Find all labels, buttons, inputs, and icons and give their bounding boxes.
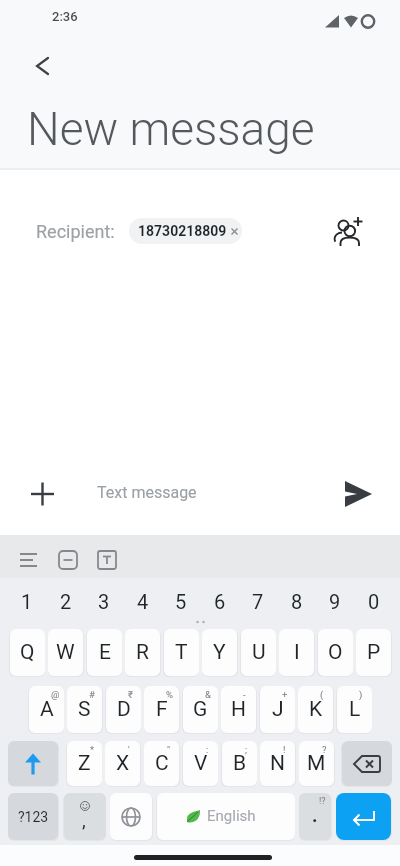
button[interactable] xyxy=(333,216,363,248)
button[interactable] xyxy=(340,478,376,510)
staticText: M xyxy=(307,751,326,776)
staticText: ; xyxy=(245,744,248,755)
staticText: A xyxy=(40,697,54,722)
staticText: % xyxy=(166,689,173,700)
button[interactable]: K xyxy=(298,686,333,733)
button[interactable]: A xyxy=(29,686,64,733)
button[interactable]: 2 xyxy=(47,586,85,616)
button[interactable]: English xyxy=(157,793,295,840)
staticText: Q xyxy=(20,640,35,665)
staticText: Z xyxy=(78,751,91,776)
staticText: G xyxy=(193,697,208,722)
staticText: ' xyxy=(128,744,130,755)
button[interactable]: M xyxy=(299,741,334,786)
staticText: . xyxy=(312,804,318,826)
button[interactable]: 6 xyxy=(201,586,239,616)
button[interactable] xyxy=(342,741,392,786)
button[interactable]: I xyxy=(279,629,314,676)
staticText: , xyxy=(82,809,86,831)
staticText: !? xyxy=(319,796,326,807)
button[interactable]: ?123 xyxy=(8,793,58,840)
staticText: I xyxy=(294,640,300,665)
button[interactable]: W xyxy=(48,629,83,676)
staticText: R xyxy=(136,640,149,665)
staticText: 6 xyxy=(214,590,226,613)
staticText: 2:36 xyxy=(52,9,78,24)
staticText: + xyxy=(282,689,288,700)
staticText: ( xyxy=(320,689,324,700)
staticText: 0 xyxy=(368,590,380,613)
button[interactable]: J xyxy=(260,686,295,733)
staticText: : xyxy=(206,744,209,755)
staticText: * xyxy=(90,744,95,755)
button[interactable]: !? xyxy=(299,793,331,840)
staticText: L xyxy=(349,697,361,722)
button[interactable] xyxy=(24,46,64,86)
button[interactable]: D xyxy=(106,686,141,733)
staticText: 5 xyxy=(175,590,187,613)
button[interactable]: H xyxy=(221,686,256,733)
button[interactable] xyxy=(94,548,122,572)
button[interactable]: 3 xyxy=(85,586,123,616)
button[interactable] xyxy=(26,477,60,511)
staticText: English xyxy=(207,807,256,825)
staticText: T xyxy=(175,640,188,665)
staticText: New message xyxy=(27,102,315,156)
staticText: P xyxy=(367,640,381,665)
button[interactable]: C xyxy=(144,741,179,786)
button[interactable] xyxy=(55,548,83,572)
staticText: V xyxy=(194,751,208,776)
button[interactable]: V xyxy=(183,741,218,786)
button[interactable]: 18730218809 xyxy=(129,218,242,244)
staticText: B xyxy=(233,751,247,776)
button[interactable]: B xyxy=(222,741,257,786)
button[interactable]: Z xyxy=(67,741,102,786)
button[interactable]: S xyxy=(67,686,102,733)
button[interactable]: F xyxy=(144,686,179,733)
button[interactable]: U xyxy=(241,629,276,676)
button[interactable]: G xyxy=(183,686,218,733)
staticText: 9 xyxy=(329,590,341,613)
staticText: F xyxy=(156,697,168,722)
staticText: ! xyxy=(283,744,286,755)
button[interactable] xyxy=(8,741,58,786)
button[interactable]: 5 xyxy=(162,586,200,616)
button[interactable]: 0 xyxy=(355,586,393,616)
staticText: Y xyxy=(213,640,226,665)
button[interactable]: P xyxy=(356,629,391,676)
button[interactable]: O xyxy=(318,629,353,676)
staticText: 7 xyxy=(252,590,264,613)
staticText: Recipient: xyxy=(36,221,115,242)
button[interactable]: , xyxy=(64,793,106,840)
staticText: @ xyxy=(51,689,60,700)
button[interactable]: Q xyxy=(10,629,45,676)
button[interactable]: R xyxy=(125,629,160,676)
staticText: ?123 xyxy=(18,809,49,825)
button[interactable]: Y xyxy=(202,629,237,676)
staticText: & xyxy=(205,689,211,700)
staticText: 18730218809 xyxy=(138,223,227,239)
button[interactable]: 4 xyxy=(124,586,162,616)
staticText: N xyxy=(270,751,285,776)
button[interactable]: 8 xyxy=(278,586,316,616)
staticText: K xyxy=(309,697,323,722)
staticText: E xyxy=(99,640,111,665)
button[interactable] xyxy=(12,548,46,572)
button[interactable]: 1 xyxy=(8,586,46,616)
button[interactable]: L xyxy=(337,686,372,733)
button[interactable]: E xyxy=(87,629,122,676)
staticText: C xyxy=(155,751,169,776)
staticText: ) xyxy=(359,689,363,700)
staticText: ₹ xyxy=(128,689,133,700)
button[interactable] xyxy=(110,793,152,840)
staticText: ? xyxy=(322,744,327,755)
button[interactable]: 9 xyxy=(316,586,354,616)
button[interactable]: 7 xyxy=(239,586,277,616)
staticText: " xyxy=(167,744,171,755)
staticText: - xyxy=(243,689,246,700)
button[interactable]: X xyxy=(105,741,140,786)
button[interactable]: N xyxy=(260,741,295,786)
button[interactable]: T xyxy=(164,629,199,676)
staticText: S xyxy=(78,697,91,722)
button[interactable] xyxy=(336,793,391,840)
